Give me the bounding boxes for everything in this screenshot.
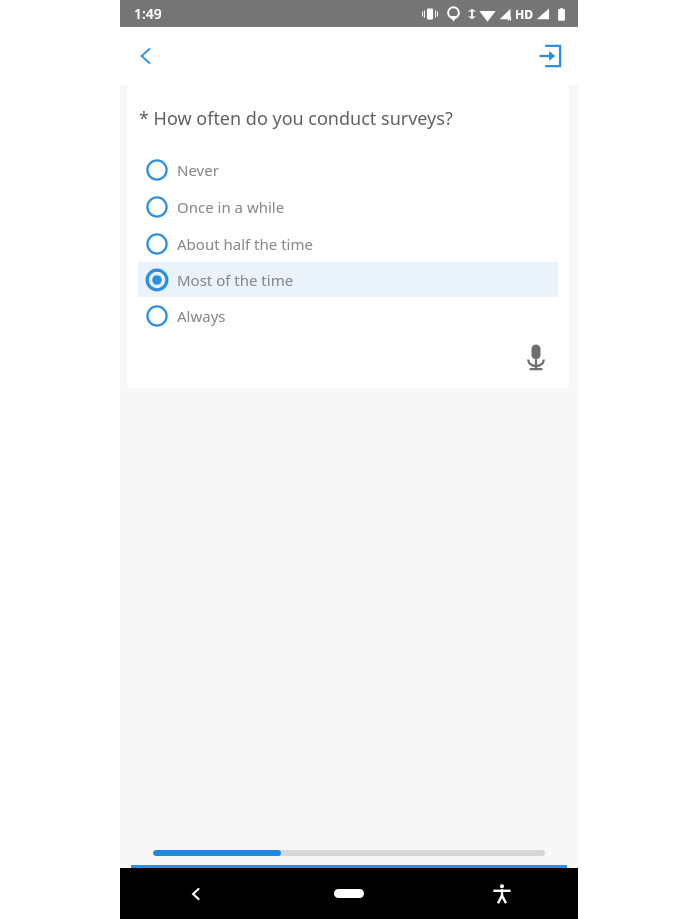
button[interactable]: Always — [138, 297, 558, 334]
button[interactable]: Back — [124, 34, 168, 78]
staticText: Never — [177, 160, 219, 180]
button[interactable]: Home — [272, 868, 425, 919]
button[interactable]: About half the time — [138, 225, 558, 262]
button[interactable]: Voice input — [519, 340, 553, 374]
button[interactable]: Accessibility — [425, 868, 578, 919]
button[interactable]: Most of the time — [138, 262, 558, 297]
button[interactable]: Once in a while — [138, 188, 558, 225]
staticText: About half the time — [177, 234, 313, 254]
staticText: * How often do you conduct surveys? — [139, 106, 453, 131]
button[interactable]: Next — [131, 865, 567, 911]
staticText: Once in a while — [177, 197, 285, 217]
staticText: HD — [515, 6, 533, 22]
staticText: Always — [177, 306, 226, 326]
staticText: 1:49 — [134, 4, 162, 23]
button[interactable]: Back — [120, 868, 272, 919]
button[interactable]: Exit survey — [528, 34, 572, 78]
button[interactable]: Never — [138, 151, 558, 188]
staticText: Most of the time — [177, 270, 294, 290]
staticText: Next — [328, 875, 370, 901]
